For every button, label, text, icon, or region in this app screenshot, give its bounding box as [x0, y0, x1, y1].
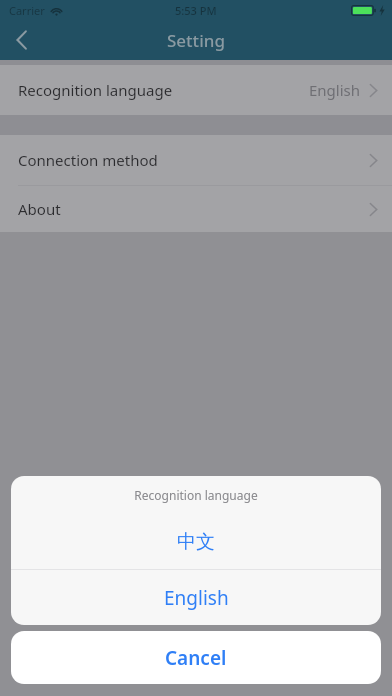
staticText: About: [18, 199, 61, 219]
staticText: English: [309, 80, 361, 100]
staticText: Recognition language: [134, 487, 258, 503]
button[interactable]: Cancel: [11, 631, 381, 684]
staticText: Carrier: [9, 3, 45, 18]
button[interactable]: Recognition language: [0, 65, 392, 115]
button[interactable]: Connection method: [0, 135, 392, 185]
staticText: 5:53 PM: [175, 3, 217, 18]
staticText: Recognition language: [18, 80, 173, 100]
staticText: 中文: [177, 530, 215, 554]
staticText: Connection method: [18, 150, 158, 170]
button[interactable]: About: [0, 186, 392, 232]
button[interactable]: Back: [0, 20, 44, 60]
staticText: Cancel: [165, 645, 227, 671]
button[interactable]: 中文: [11, 514, 381, 569]
button[interactable]: English: [11, 570, 381, 625]
staticText: Setting: [167, 29, 225, 52]
staticText: English: [164, 585, 229, 611]
